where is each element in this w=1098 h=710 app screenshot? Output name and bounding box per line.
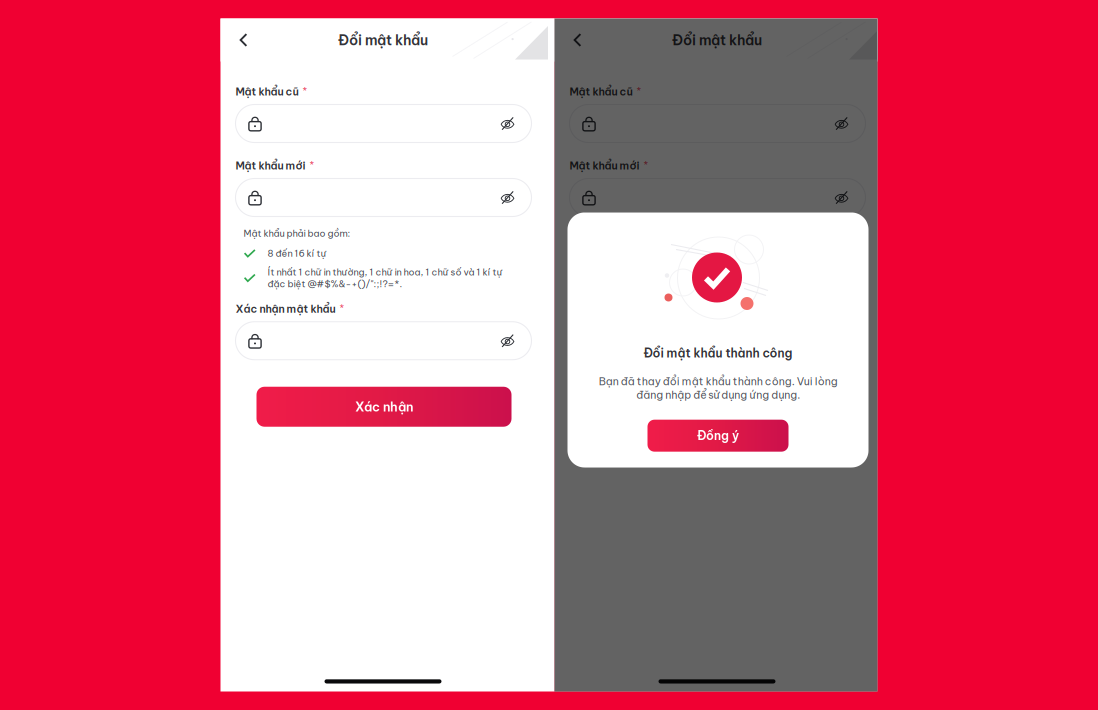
staticText: Ít nhất 1 chữ in thường, 1 chữ in hoa, 1…: [601, 266, 836, 290]
staticText: *: [339, 302, 344, 314]
staticText: Mật khẩu phải bao gồm:: [243, 227, 350, 239]
button[interactable]: Xác nhận: [590, 387, 845, 427]
staticText: Mật khẩu cũ: [569, 85, 632, 98]
button[interactable]: Back: [560, 18, 594, 61]
staticText: *: [302, 85, 307, 97]
staticText: Xác nhận: [689, 399, 747, 415]
button[interactable]: Đồng ý: [647, 420, 788, 452]
staticText: Bạn đã thay đổi mật khẩu thành công. Vui…: [598, 375, 837, 402]
staticText: Mật khẩu mới: [569, 159, 639, 172]
staticText: Đổi mật khẩu: [672, 31, 762, 49]
staticText: Đồng ý: [697, 428, 739, 443]
staticText: 8 đến 16 kí tự: [267, 247, 326, 259]
staticText: Đổi mật khẩu thành công: [643, 345, 792, 361]
staticText: Ít nhất 1 chữ in thường, 1 chữ in hoa, 1…: [267, 266, 502, 290]
staticText: *: [309, 159, 314, 171]
staticText: *: [643, 159, 648, 171]
button[interactable]: Xác nhận: [256, 387, 511, 427]
staticText: Mật khẩu cũ: [235, 85, 298, 98]
staticText: Xác nhận mật khẩu: [235, 302, 335, 315]
staticText: Mật khẩu mới: [235, 159, 305, 172]
staticText: *: [636, 85, 641, 97]
staticText: Đổi mật khẩu: [338, 31, 428, 49]
staticText: Xác nhận: [355, 399, 413, 415]
button[interactable]: Back: [226, 18, 260, 61]
